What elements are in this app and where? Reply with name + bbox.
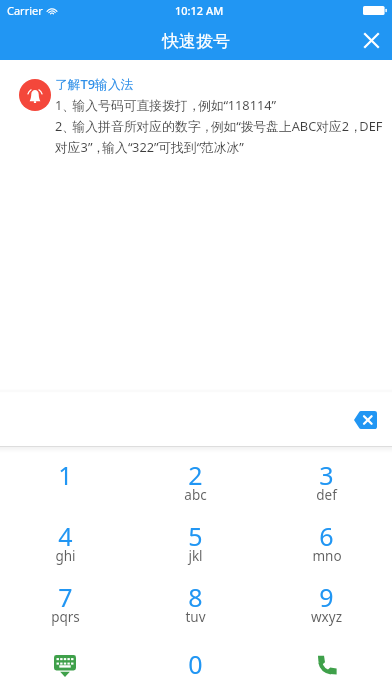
staticText: 3 bbox=[319, 458, 334, 492]
staticText: wxyz bbox=[311, 608, 342, 626]
staticText: 4 bbox=[58, 519, 73, 553]
staticText: 2、输入拼音所对应的数字，例如“拨号盘上ABC对应2，DEF bbox=[55, 117, 383, 134]
staticText: 10:12 AM bbox=[175, 3, 224, 18]
button[interactable]: 9 bbox=[261, 569, 392, 630]
staticText: def bbox=[316, 486, 337, 504]
button[interactable]: 5 bbox=[130, 508, 261, 569]
button[interactable]: Call bbox=[261, 630, 392, 696]
button[interactable]: Backspace bbox=[342, 397, 388, 443]
staticText: mno bbox=[312, 547, 342, 565]
staticText: 快速拨号 bbox=[162, 31, 230, 52]
staticText: 5 bbox=[188, 519, 203, 553]
button[interactable]: 6 bbox=[261, 508, 392, 569]
staticText: Carrier bbox=[7, 3, 43, 18]
staticText: 6 bbox=[319, 519, 334, 553]
button[interactable]: 4 bbox=[0, 508, 130, 569]
staticText: 1、输入号码可直接拨打，例如“118114” bbox=[55, 96, 276, 113]
button[interactable]: Close bbox=[349, 18, 392, 62]
staticText: 1 bbox=[58, 458, 73, 492]
staticText: pqrs bbox=[51, 608, 80, 626]
button[interactable]: 3 bbox=[261, 447, 392, 508]
button[interactable]: Hide keyboard bbox=[0, 630, 130, 696]
button[interactable]: 8 bbox=[130, 569, 261, 630]
staticText: 7 bbox=[58, 580, 73, 614]
button[interactable]: 2 bbox=[130, 447, 261, 508]
button[interactable]: 1 bbox=[0, 447, 130, 508]
staticText: jkl bbox=[188, 547, 203, 565]
staticText: abc bbox=[184, 486, 207, 504]
staticText: 0 bbox=[188, 647, 203, 681]
staticText: tuv bbox=[185, 608, 206, 626]
staticText: 9 bbox=[319, 580, 334, 614]
staticText: 8 bbox=[188, 580, 203, 614]
staticText: 2 bbox=[188, 458, 203, 492]
button[interactable]: 了解T9输入法 bbox=[55, 75, 134, 92]
button[interactable]: 0 bbox=[130, 630, 261, 696]
staticText: ghi bbox=[55, 547, 76, 565]
staticText: 对应3”，输入“322”可找到“范冰冰” bbox=[55, 138, 244, 155]
button[interactable]: 7 bbox=[0, 569, 130, 630]
